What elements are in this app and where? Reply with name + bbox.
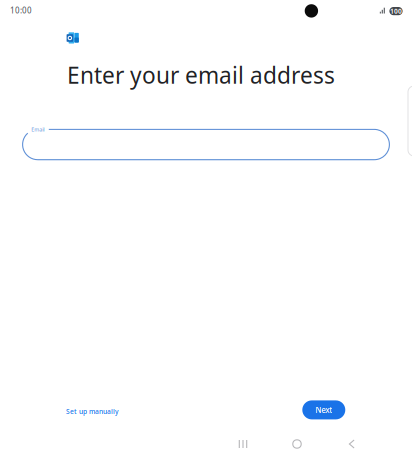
staticText: Set up manually (66, 407, 119, 416)
staticText: 10:00 (10, 5, 32, 16)
button[interactable]: Set up manually (60, 402, 125, 421)
button[interactable]: Home (277, 432, 317, 456)
staticText: 100 (390, 7, 402, 16)
staticText: Enter your email address (67, 60, 335, 90)
staticText: Email (31, 126, 44, 133)
staticText: Next (315, 405, 332, 415)
button[interactable]: Back (332, 432, 372, 456)
button[interactable]: Email (22, 129, 390, 160)
button[interactable]: Next (302, 400, 345, 419)
button[interactable]: Recent apps (223, 432, 263, 456)
